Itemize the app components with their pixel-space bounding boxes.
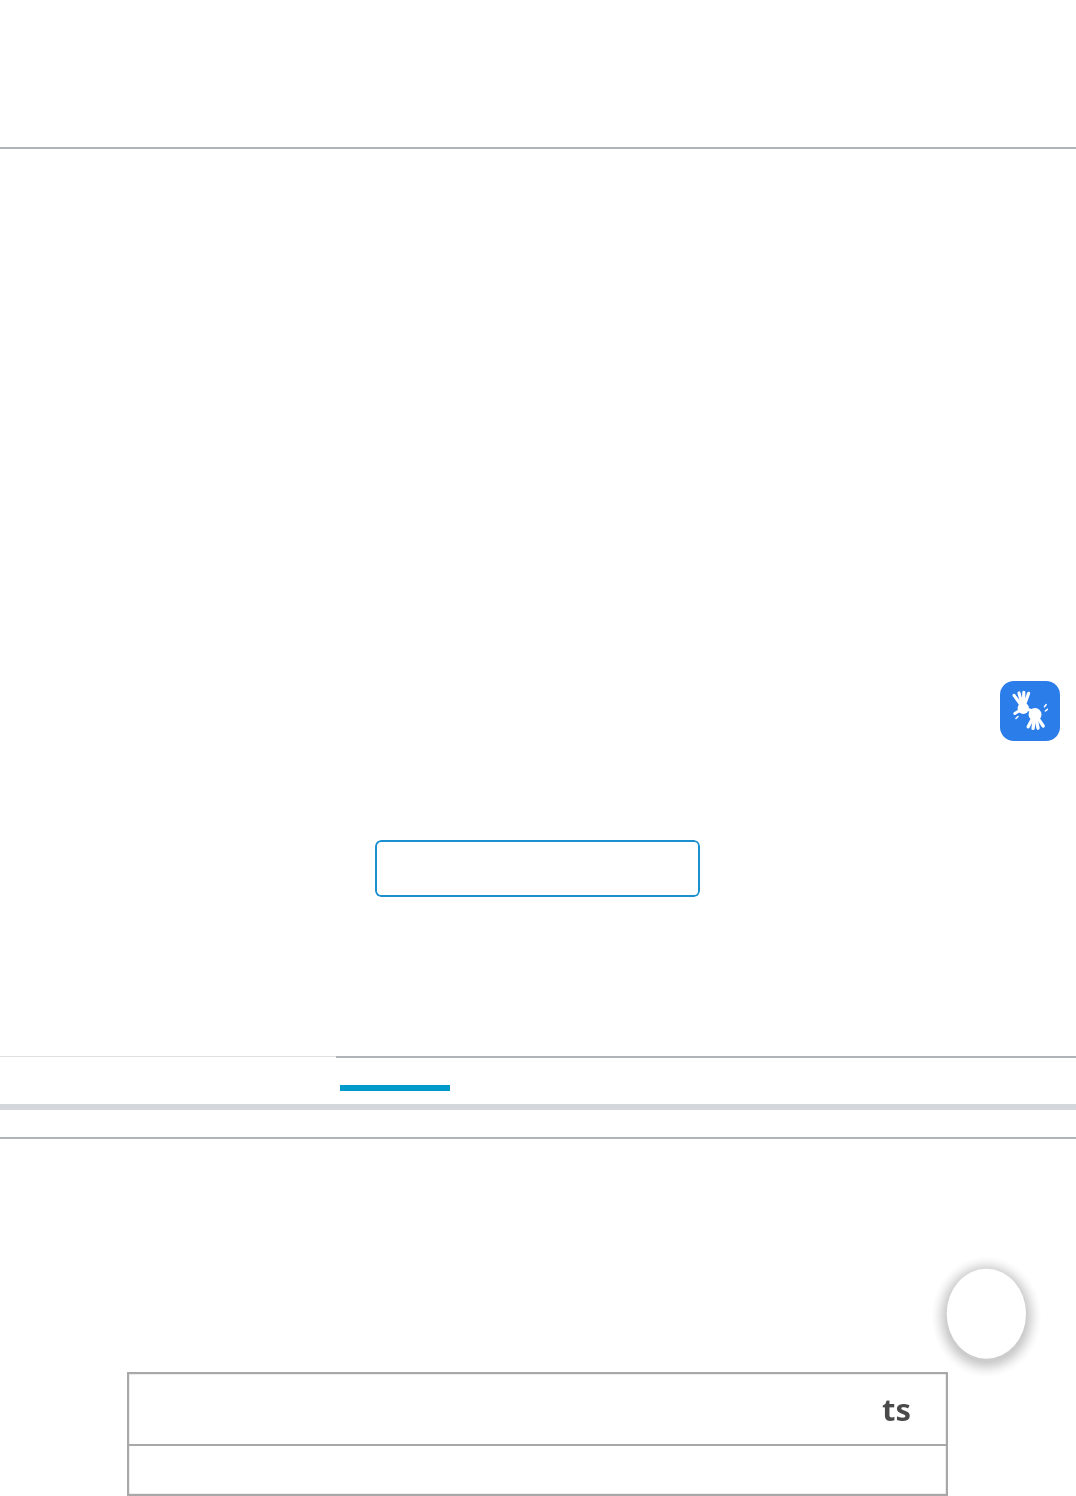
button[interactable]: Text field xyxy=(375,840,700,897)
button[interactable]: Action button xyxy=(930,1255,1045,1375)
staticText: ts xyxy=(882,1388,912,1430)
button[interactable]: Sign language interpreting xyxy=(1000,681,1060,741)
